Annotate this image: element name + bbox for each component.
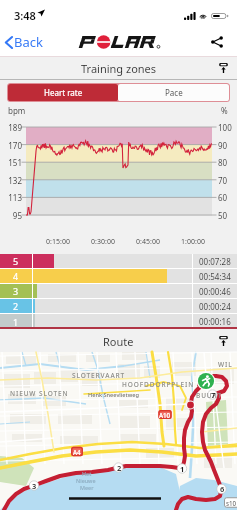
staticText: 00:54:34 (199, 271, 231, 282)
staticText: 0:30:00 (88, 237, 118, 247)
staticText: 1 (180, 464, 185, 474)
staticText: 7 (211, 390, 216, 400)
staticText: Het (82, 470, 92, 477)
button[interactable]: Pace (118, 84, 229, 101)
staticText: Pace (165, 87, 183, 98)
staticText: 151 (1, 157, 22, 168)
button[interactable]: 2 (0, 299, 237, 313)
staticText: WIL (218, 360, 233, 369)
staticText: Route (103, 334, 134, 349)
staticText: A4 (73, 448, 81, 456)
staticText: 100 (218, 122, 232, 133)
staticText: 00:00:16 (199, 316, 231, 327)
staticText: 80 (218, 157, 228, 168)
button[interactable]: Collapse section (210, 332, 237, 350)
staticText: 132 (1, 175, 22, 186)
staticText: NIEUW SLOTEN (10, 389, 69, 398)
staticText: Training zones (81, 61, 157, 76)
button[interactable]: 3 (0, 284, 237, 298)
staticText: 70 (218, 175, 228, 186)
staticText: HOOFDDORPPLEIN (122, 380, 195, 389)
staticText: bpm (8, 105, 26, 116)
staticText: 2 (117, 463, 122, 473)
button[interactable]: Collapse section (210, 59, 237, 77)
staticText: 3:48 (14, 8, 36, 23)
staticText: Heart rate (44, 87, 83, 98)
staticText: SLOTERVAART (72, 371, 126, 380)
staticText: 1:00:00 (178, 237, 208, 247)
staticText: 00:00:24 (199, 301, 231, 312)
staticText: BUURT (196, 391, 223, 400)
button[interactable]: 1 (0, 314, 237, 329)
staticText: 189 (1, 122, 22, 133)
staticText: Henk Sneevlietweg (88, 391, 139, 399)
staticText: 00:07:28 (199, 256, 231, 267)
staticText: Meer (80, 484, 94, 491)
staticText: 3 (32, 481, 37, 491)
button[interactable]: Share (206, 31, 228, 53)
staticText: 90 (218, 140, 228, 151)
staticText: 5 (13, 255, 19, 267)
staticText: 4 (13, 270, 19, 282)
staticText: 3 (13, 285, 19, 297)
staticText: 0:45:00 (133, 237, 163, 247)
staticText: 0:15:00 (43, 237, 73, 247)
button[interactable]: 4 (0, 269, 237, 283)
button[interactable]: Back (0, 31, 51, 53)
staticText: Back (14, 33, 43, 51)
staticText: % (221, 105, 228, 116)
button[interactable]: 5 (0, 254, 237, 268)
staticText: s10 (226, 499, 237, 507)
staticText: A10 (159, 411, 171, 419)
staticText: Nieuwe (76, 477, 96, 484)
staticText: 170 (1, 140, 22, 151)
staticText: 00:00:46 (199, 286, 231, 297)
staticText: 60 (218, 192, 228, 203)
staticText: 50 (218, 210, 228, 221)
button[interactable]: Heart rate (8, 84, 118, 101)
staticText: 6 (220, 484, 225, 494)
staticText: 95 (1, 210, 22, 221)
staticText: 1 (13, 316, 19, 328)
staticText: 2 (13, 300, 19, 312)
staticText: 113 (1, 192, 22, 203)
